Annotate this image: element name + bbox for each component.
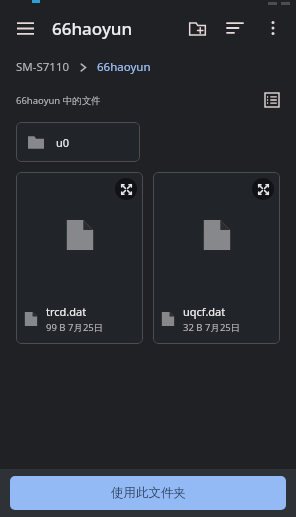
button[interactable]: Create new folder — [178, 9, 216, 47]
staticText: u0 — [56, 135, 70, 150]
staticText: trcd.dat — [46, 304, 87, 319]
button[interactable]: Show roots — [6, 9, 44, 47]
button[interactable]: More options — [254, 9, 292, 47]
button[interactable]: 66haoyun — [97, 55, 151, 79]
staticText: 使用此文件夹 — [111, 485, 186, 501]
button[interactable]: Preview file — [16, 172, 143, 344]
staticText: 99 B 7月25日 — [46, 321, 104, 334]
staticText: 66haoyun 中的文件 — [16, 94, 101, 107]
button[interactable]: u0 — [16, 122, 140, 162]
button[interactable]: 使用此文件夹 — [10, 476, 286, 510]
button[interactable]: SM-S7110 — [16, 55, 70, 79]
button[interactable]: Preview file — [115, 178, 137, 200]
staticText: 66haoyun — [52, 17, 133, 40]
button[interactable]: Preview file — [153, 172, 280, 344]
button[interactable]: Sort — [216, 9, 254, 47]
button[interactable]: Switch to list view — [258, 86, 286, 114]
staticText: 66haoyun — [97, 59, 151, 75]
staticText: SM-S7110 — [16, 59, 70, 75]
button[interactable]: Preview file — [252, 178, 274, 200]
staticText: uqcf.dat — [183, 304, 226, 319]
staticText: 32 B 7月25日 — [183, 321, 241, 334]
